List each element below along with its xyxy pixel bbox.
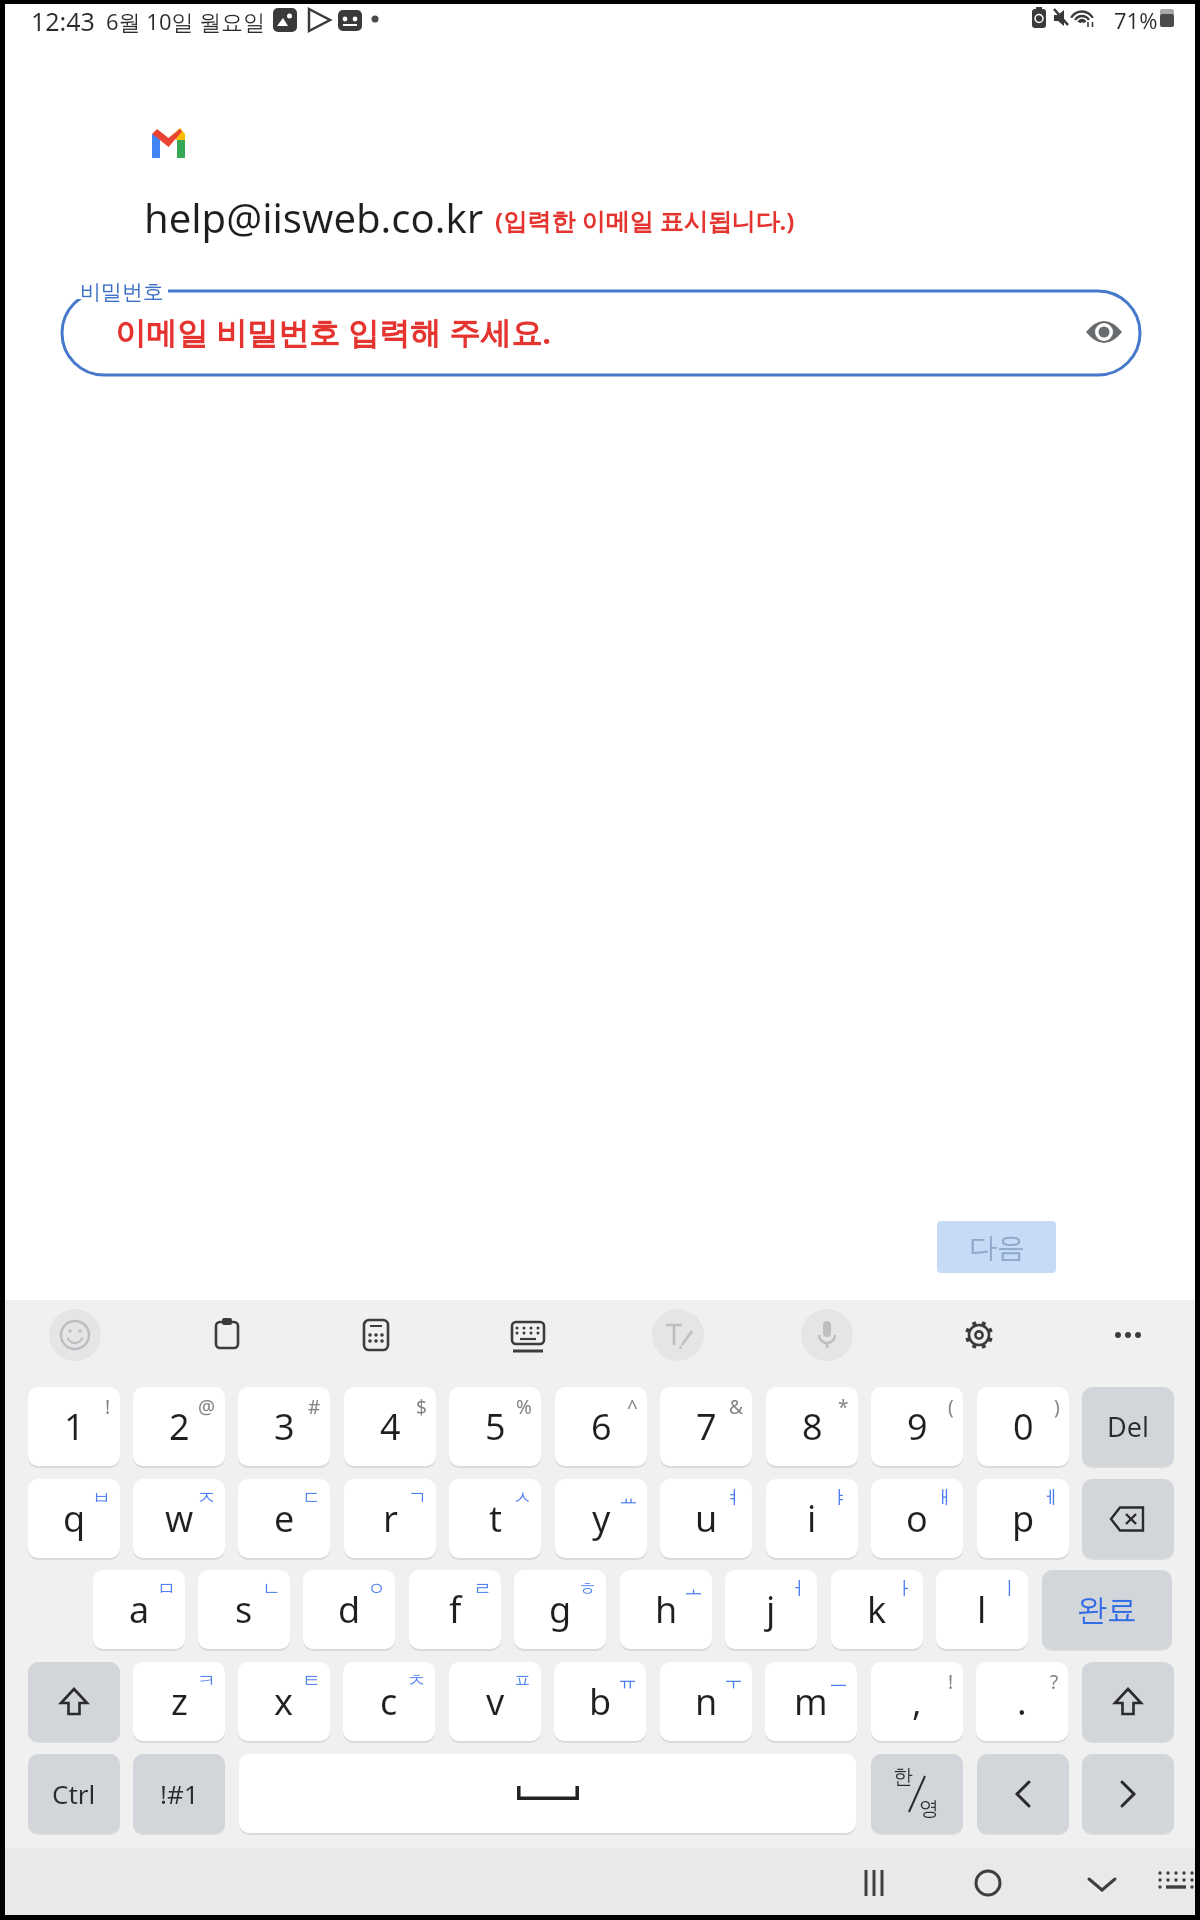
button[interactable]: Del: [1082, 1387, 1174, 1466]
button[interactable]: [957, 1313, 1001, 1357]
staticText: ㄷ: [302, 1486, 321, 1510]
button[interactable]: [53, 1313, 97, 1357]
staticText: !: [105, 1394, 111, 1420]
button[interactable]: [28, 1662, 120, 1741]
button[interactable]: a: [93, 1570, 185, 1649]
staticText: ㅏ: [895, 1577, 914, 1601]
button[interactable]: [354, 1313, 398, 1357]
button[interactable]: 2: [133, 1387, 225, 1466]
button[interactable]: [1086, 319, 1122, 345]
button[interactable]: 4: [344, 1387, 436, 1466]
button[interactable]: o: [871, 1479, 963, 1558]
staticText: 8: [802, 1402, 823, 1451]
button[interactable]: z: [133, 1662, 225, 1741]
button[interactable]: d: [303, 1570, 395, 1649]
staticText: e: [274, 1494, 295, 1543]
button[interactable]: 6: [555, 1387, 647, 1466]
staticText: ,: [912, 1677, 922, 1726]
staticText: Del: [1107, 1408, 1149, 1445]
staticText: ㅓ: [789, 1577, 808, 1601]
staticText: p: [1012, 1494, 1035, 1543]
button[interactable]: 8: [766, 1387, 858, 1466]
button[interactable]: [1106, 1313, 1150, 1357]
button[interactable]: c: [343, 1662, 435, 1741]
button[interactable]: 한: [871, 1754, 963, 1833]
staticText: i: [807, 1494, 817, 1543]
button[interactable]: 7: [660, 1387, 752, 1466]
button[interactable]: [1082, 1662, 1174, 1741]
button[interactable]: Ctrl: [28, 1754, 120, 1833]
button[interactable]: l: [936, 1570, 1028, 1649]
staticText: ): [1054, 1394, 1060, 1420]
staticText: l: [977, 1585, 987, 1634]
button[interactable]: [966, 1861, 1010, 1905]
button[interactable]: [205, 1313, 249, 1357]
button[interactable]: [1156, 1865, 1196, 1901]
button[interactable]: g: [514, 1570, 606, 1649]
button[interactable]: [1080, 1861, 1124, 1905]
button[interactable]: 0: [977, 1387, 1069, 1466]
button[interactable]: [1082, 1754, 1174, 1833]
button[interactable]: y: [555, 1479, 647, 1558]
staticText: 다음: [969, 1230, 1025, 1265]
staticText: ㅍ: [513, 1669, 532, 1693]
button[interactable]: [977, 1754, 1069, 1833]
button[interactable]: j: [725, 1570, 817, 1649]
button[interactable]: !#1: [133, 1754, 225, 1833]
staticText: 6: [591, 1402, 612, 1451]
button[interactable]: m: [765, 1662, 857, 1741]
button[interactable]: ,: [871, 1662, 963, 1741]
button[interactable]: k: [831, 1570, 923, 1649]
staticText: u: [695, 1494, 718, 1543]
button[interactable]: [656, 1313, 700, 1357]
button[interactable]: f: [409, 1570, 501, 1649]
staticText: q: [63, 1494, 86, 1543]
button[interactable]: 완료: [1042, 1570, 1172, 1649]
staticText: 71%: [1114, 5, 1158, 35]
button[interactable]: 5: [449, 1387, 541, 1466]
button[interactable]: i: [766, 1479, 858, 1558]
button[interactable]: [62, 291, 1140, 375]
button[interactable]: x: [238, 1662, 330, 1741]
button[interactable]: 9: [871, 1387, 963, 1466]
button[interactable]: 다음: [937, 1221, 1056, 1273]
button[interactable]: r: [344, 1479, 436, 1558]
staticText: g: [549, 1585, 572, 1634]
button[interactable]: [1082, 1479, 1174, 1558]
staticText: k: [867, 1585, 887, 1634]
staticText: ㅜ: [724, 1669, 743, 1693]
button[interactable]: [853, 1861, 897, 1905]
staticText: y: [592, 1494, 611, 1543]
staticText: ㅊ: [407, 1669, 426, 1693]
button[interactable]: s: [198, 1570, 290, 1649]
button[interactable]: [805, 1313, 849, 1357]
staticText: ㄱ: [408, 1486, 427, 1510]
staticText: c: [380, 1677, 398, 1726]
button[interactable]: b: [554, 1662, 646, 1741]
button[interactable]: p: [977, 1479, 1069, 1558]
staticText: ㅁ: [157, 1577, 176, 1601]
button[interactable]: w: [133, 1479, 225, 1558]
button[interactable]: [239, 1754, 856, 1833]
button[interactable]: q: [28, 1479, 120, 1558]
button[interactable]: t: [449, 1479, 541, 1558]
button[interactable]: h: [620, 1570, 712, 1649]
staticText: ?: [1050, 1669, 1059, 1695]
button[interactable]: [506, 1313, 550, 1357]
staticText: 이메일 비밀번호 입력해 주세요.: [115, 311, 551, 353]
button[interactable]: n: [660, 1662, 752, 1741]
staticText: *: [838, 1394, 849, 1420]
button[interactable]: e: [238, 1479, 330, 1558]
button[interactable]: v: [449, 1662, 541, 1741]
button[interactable]: .: [976, 1662, 1068, 1741]
staticText: h: [655, 1585, 678, 1634]
button[interactable]: 1: [28, 1387, 120, 1466]
staticText: ㅑ: [830, 1486, 849, 1510]
staticText: ㅌ: [302, 1669, 321, 1693]
staticText: f: [449, 1585, 462, 1634]
button[interactable]: u: [660, 1479, 752, 1558]
staticText: ㅠ: [618, 1669, 637, 1693]
button[interactable]: 3: [238, 1387, 330, 1466]
staticText: ㅛ: [619, 1486, 638, 1510]
staticText: 완료: [1077, 1591, 1137, 1629]
